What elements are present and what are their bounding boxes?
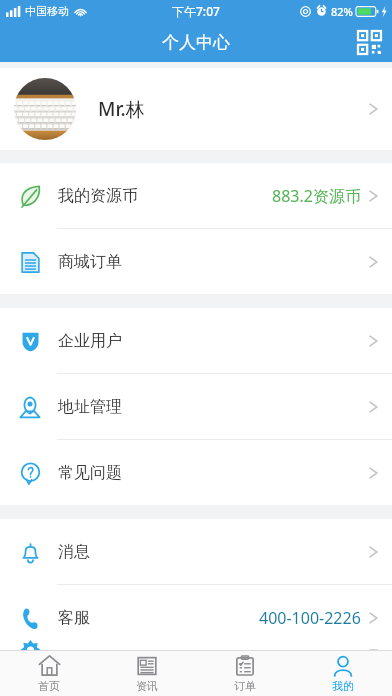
staticText: 82% (331, 4, 353, 19)
button[interactable]: 企业用户 (0, 308, 392, 373)
staticText: 地址管理 (58, 397, 122, 417)
staticText: 个人中心 (162, 32, 230, 53)
button[interactable]: 商城订单 (0, 229, 392, 294)
staticText: 883.2资源币 (272, 185, 361, 207)
staticText: 客服 (58, 608, 90, 628)
staticText: 商城订单 (58, 252, 122, 272)
button[interactable]: 客服 (0, 585, 392, 650)
staticText: 企业用户 (58, 331, 122, 351)
button[interactable]: 资讯 (98, 651, 196, 696)
button[interactable]: 我的 (294, 651, 392, 696)
staticText: 消息 (58, 542, 90, 562)
button[interactable]: 常见问题 (0, 440, 392, 505)
button[interactable]: 扫一扫 (346, 22, 392, 62)
staticText: 订单 (234, 679, 256, 693)
staticText: 首页 (38, 679, 60, 693)
button[interactable]: Mr.林 (0, 68, 392, 150)
staticText: 我的 (332, 679, 354, 693)
staticText: 下午7:07 (172, 3, 220, 19)
button[interactable]: 订单 (196, 651, 294, 696)
button[interactable]: 消息 (0, 519, 392, 584)
button[interactable]: 我的资源币 (0, 163, 392, 228)
staticText: 常见问题 (58, 463, 122, 483)
staticText: 400-100-2226 (259, 607, 361, 629)
staticText: 中国移动 (25, 4, 69, 18)
staticText: 资讯 (136, 679, 158, 693)
button[interactable]: 首页 (0, 651, 98, 696)
button[interactable]: 地址管理 (0, 374, 392, 439)
staticText: Mr.林 (98, 96, 145, 122)
staticText: 我的资源币 (58, 186, 138, 206)
